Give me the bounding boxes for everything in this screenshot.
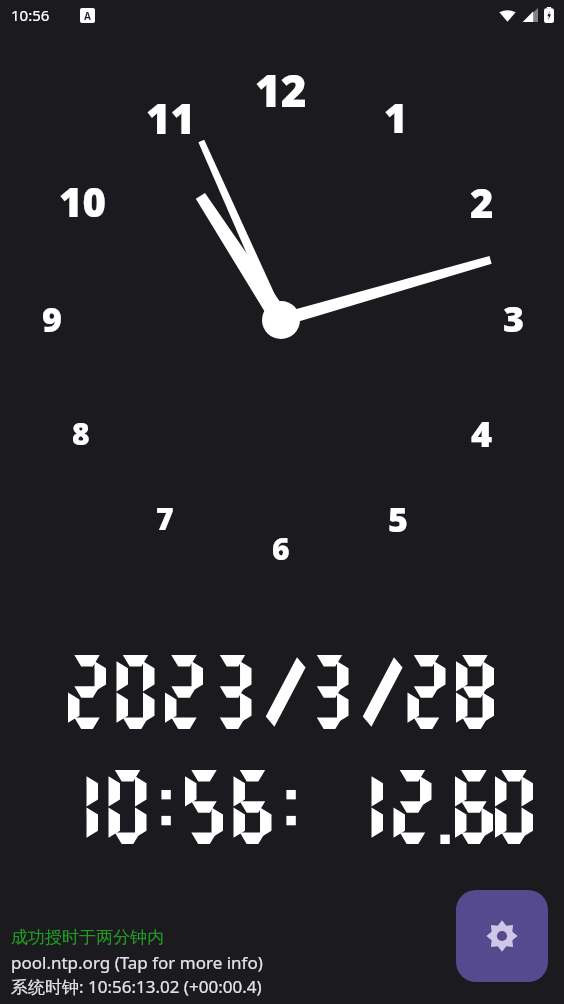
staticText: 10 <box>59 174 106 228</box>
staticText: 11 <box>146 89 196 146</box>
staticText: 7 <box>156 498 174 539</box>
staticText: 3 <box>503 294 525 343</box>
staticText: 12 <box>255 60 307 120</box>
staticText: 6 <box>272 528 290 569</box>
staticText: 5 <box>388 496 408 542</box>
staticText: 9 <box>42 296 62 342</box>
staticText: 10:56 <box>11 5 50 25</box>
button[interactable]: pool.ntp.org (Tap for more info) <box>11 951 263 974</box>
staticText: 1 <box>384 90 408 144</box>
staticText: 8 <box>72 413 90 454</box>
staticText: 4 <box>471 409 493 458</box>
staticText: 系统时钟: 10:56:13.02 (+00:00.4) <box>11 975 262 998</box>
staticText: pool.ntp.org (Tap for more info) <box>11 951 263 974</box>
staticText: 2 <box>470 175 494 229</box>
staticText: A <box>84 9 91 23</box>
button[interactable]: Settings <box>456 890 548 982</box>
staticText: 成功授时于两分钟内 <box>11 927 164 948</box>
